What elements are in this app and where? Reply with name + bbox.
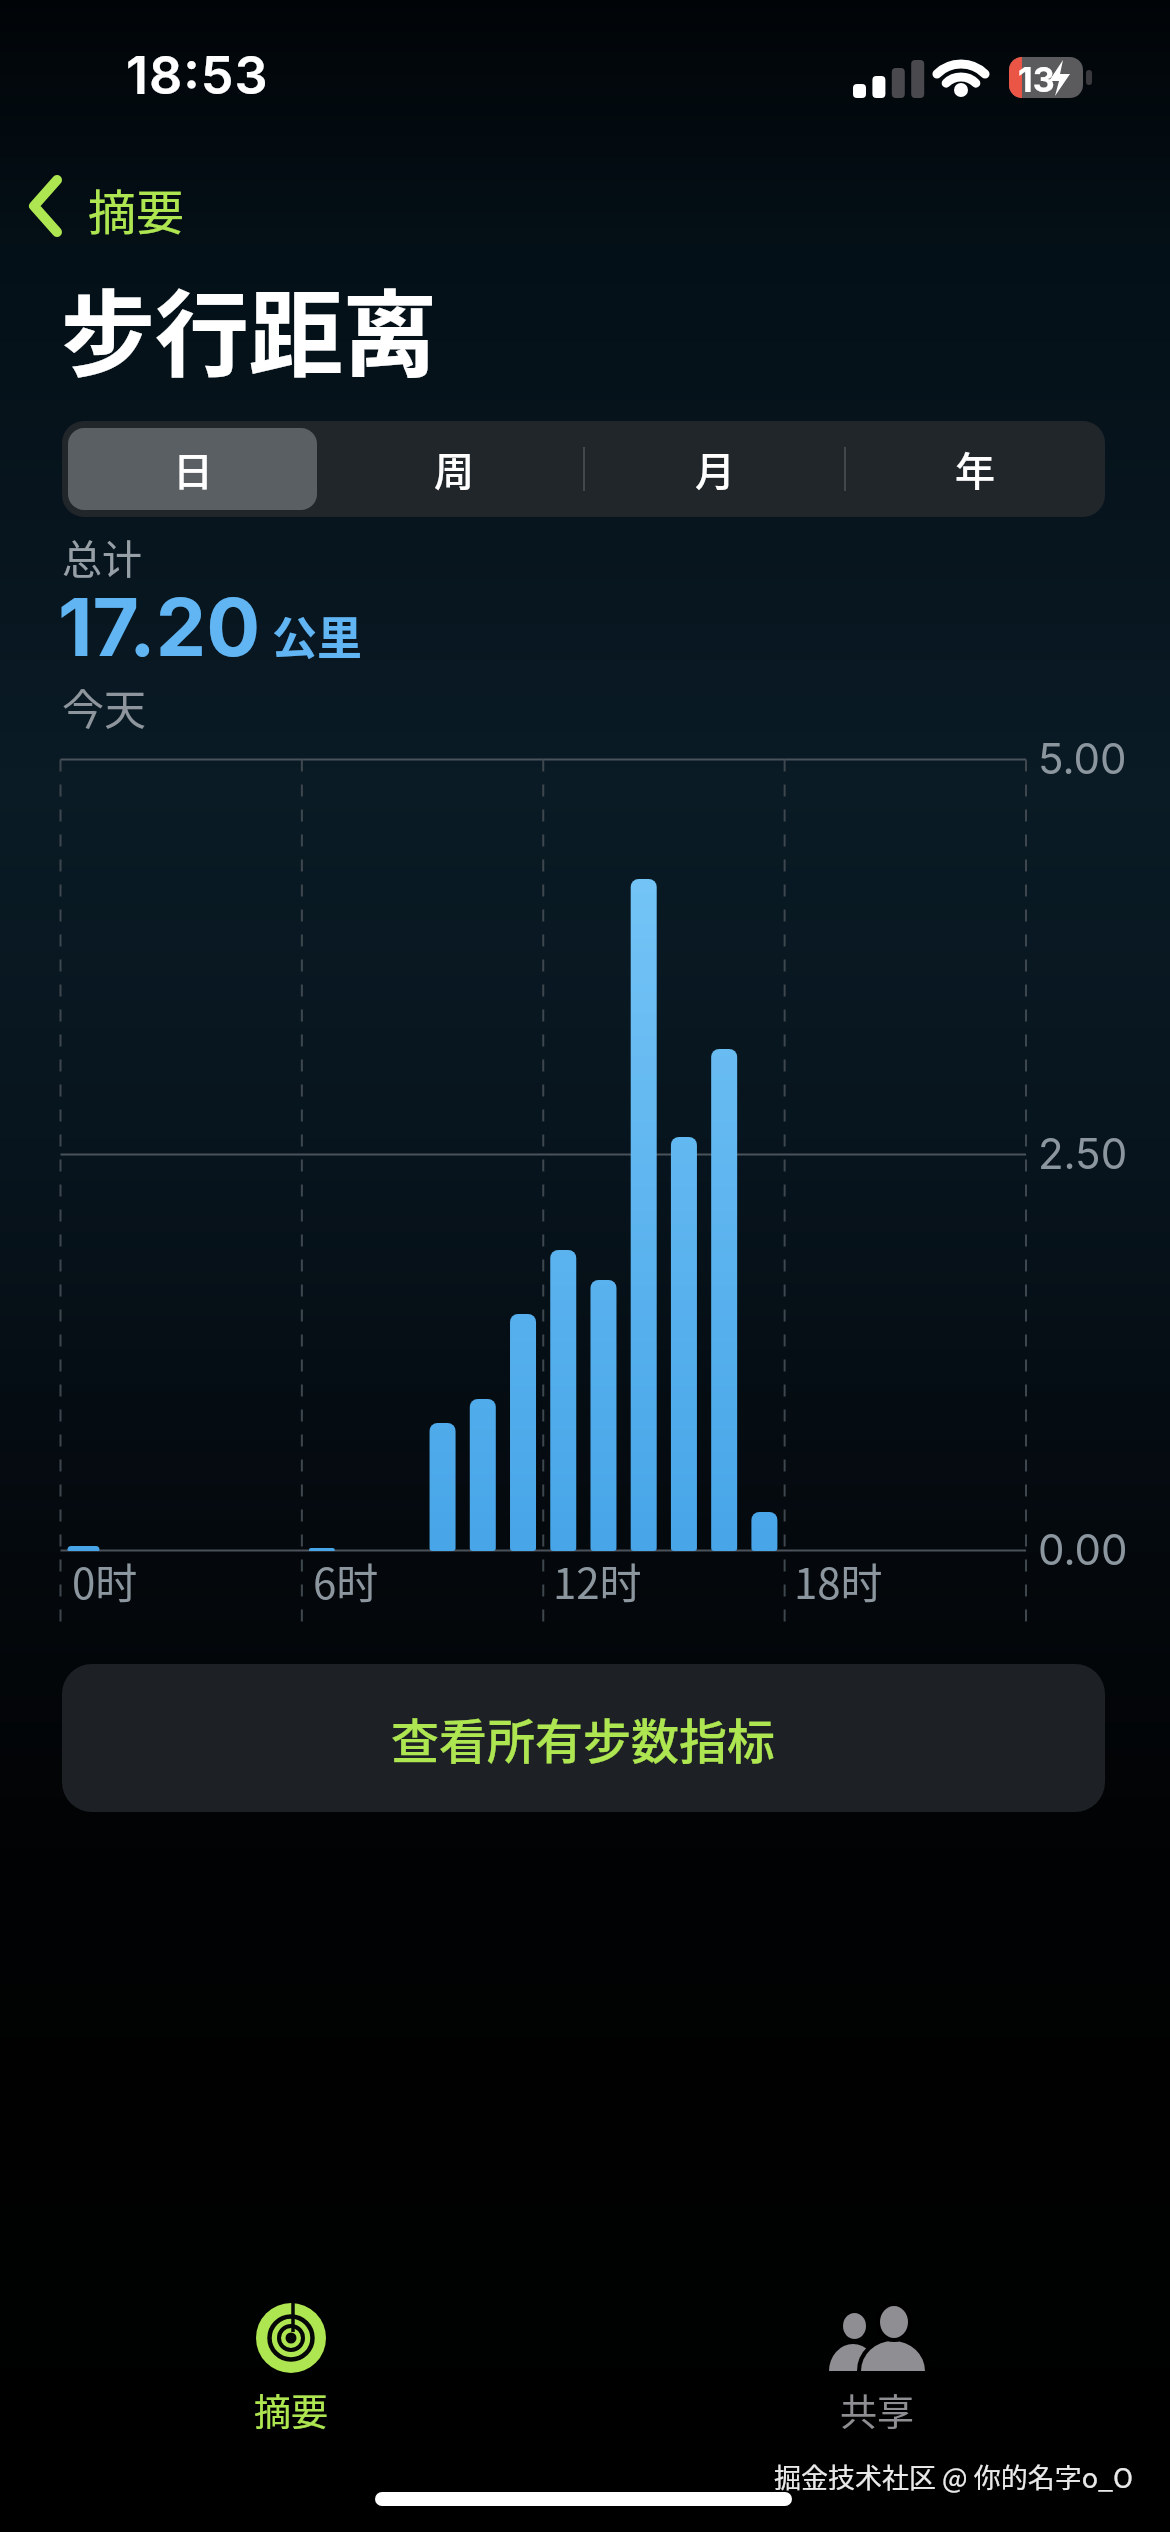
staticText: 公里	[272, 603, 363, 668]
staticText: 总计	[62, 528, 142, 586]
staticText: 18:53	[126, 44, 269, 107]
staticText: 步行距离	[61, 260, 438, 396]
staticText: 13	[1018, 59, 1055, 100]
button[interactable]	[180, 2282, 404, 2438]
button[interactable]: 月	[584, 421, 845, 517]
staticText: 摘要	[88, 174, 185, 244]
button[interactable]: 周	[323, 421, 584, 517]
staticText: 6时	[313, 1550, 379, 1611]
staticText: 0.00	[1038, 1524, 1128, 1575]
staticText: 12时	[553, 1550, 642, 1611]
button[interactable]: 查看所有步数指标	[62, 1664, 1105, 1812]
staticText: 查看所有步数指标	[391, 1703, 776, 1773]
staticText: 掘金技术社区 @ 你的名字o_O	[774, 2457, 1134, 2496]
button[interactable]: 年	[844, 421, 1105, 517]
staticText: 日	[173, 440, 213, 498]
button[interactable]	[766, 2282, 990, 2438]
button[interactable]: 日	[62, 421, 323, 517]
staticText: 周	[434, 440, 474, 498]
staticText: 2.50	[1038, 1128, 1128, 1179]
staticText: 共享	[840, 2383, 914, 2437]
staticText: 18时	[794, 1550, 883, 1611]
staticText: 年	[955, 440, 995, 498]
staticText: 今天	[62, 676, 147, 737]
staticText: 月	[695, 440, 735, 498]
staticText: 0时	[72, 1550, 138, 1611]
staticText: 17.20	[58, 578, 261, 675]
staticText: 5.00	[1038, 733, 1127, 784]
button[interactable]: 摘要	[20, 170, 240, 242]
staticText: 摘要	[254, 2383, 328, 2437]
